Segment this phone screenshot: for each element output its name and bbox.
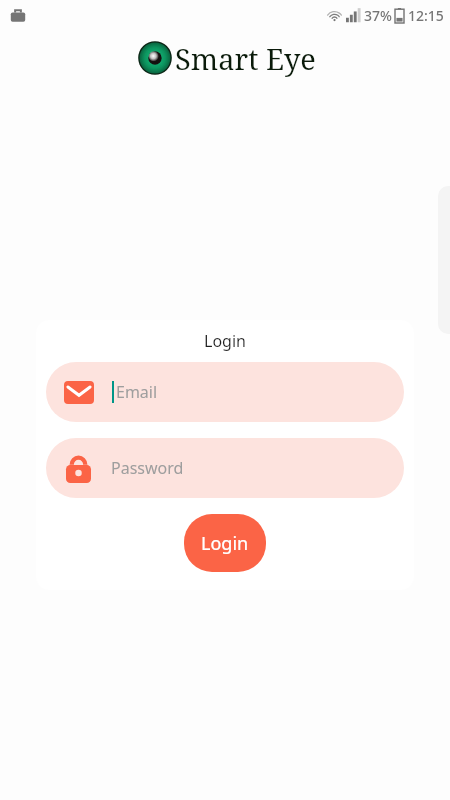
button[interactable]: Email — [46, 362, 404, 422]
staticText: Login — [36, 330, 414, 352]
staticText: Email — [116, 381, 158, 403]
staticText: Password — [111, 457, 184, 479]
staticText: 12:15 — [408, 6, 444, 25]
staticText: Smart Eye — [175, 39, 316, 78]
other: Email — [64, 381, 94, 404]
other: Password — [66, 454, 91, 483]
button[interactable]: Login — [184, 514, 266, 572]
staticText: 37% — [364, 6, 392, 25]
staticText: Login — [201, 531, 249, 556]
button[interactable]: Password — [46, 438, 404, 498]
